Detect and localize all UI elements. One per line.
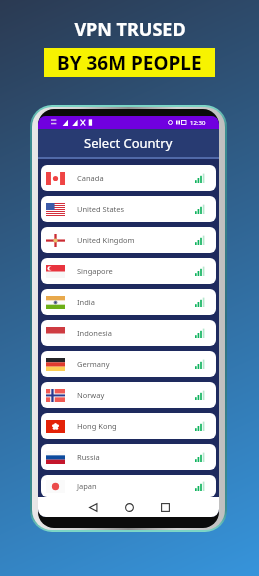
staticText: India [77,297,95,307]
staticText: Singapore [77,266,113,276]
button[interactable]: United Kingdom [41,227,216,253]
button[interactable]: Russia [41,444,216,470]
button[interactable]: Germany [41,351,216,377]
staticText: United States [77,204,125,214]
button[interactable]: Hong Kong [41,413,216,439]
button[interactable]: Back [80,497,106,517]
button[interactable]: Norway [41,382,216,408]
staticText: Hong Kong [77,421,117,431]
staticText: Select Country [84,134,173,152]
staticText: BY 36M PEOPLE [57,50,202,76]
staticText: VPN TRUSED [74,17,186,42]
button[interactable]: Home [116,497,142,517]
staticText: Norway [77,390,105,400]
button[interactable]: Canada [41,165,216,191]
staticText: 12:30 [190,119,206,127]
staticText: Russia [77,452,100,462]
button[interactable]: Japan [41,475,216,497]
button[interactable]: Singapore [41,258,216,284]
staticText: Indonesia [77,328,112,338]
button[interactable]: Recent apps [152,497,178,517]
button[interactable]: India [41,289,216,315]
staticText: Japan [77,481,97,491]
staticText: United Kingdom [77,235,135,245]
staticText: Canada [77,173,104,183]
button[interactable]: United States [41,196,216,222]
button[interactable]: Indonesia [41,320,216,346]
staticText: Germany [77,359,110,369]
